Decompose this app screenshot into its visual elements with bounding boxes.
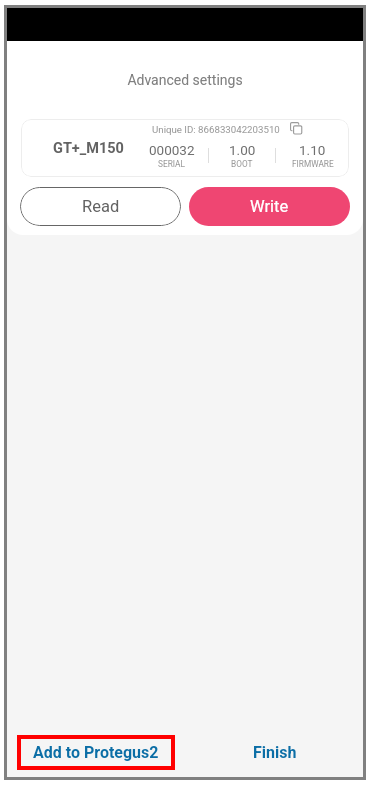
staticText: BOOT (231, 159, 253, 169)
button[interactable]: Write (189, 187, 350, 226)
button[interactable]: Add to Protegus2 (17, 735, 175, 770)
staticText: 1.10 (299, 142, 326, 158)
staticText: SERIAL (158, 159, 185, 169)
button[interactable]: Read (20, 187, 181, 226)
staticText: GT+_M150 (53, 140, 124, 157)
staticText: 1.00 (229, 142, 256, 158)
staticText: Finish (253, 743, 297, 762)
staticText: Advanced settings (7, 72, 363, 88)
other: Copy unique ID (290, 122, 302, 134)
staticText: FIRMWARE (292, 159, 334, 169)
button[interactable]: Finish (233, 733, 317, 772)
staticText: 000032 (149, 142, 195, 158)
staticText: Add to Protegus2 (33, 743, 159, 762)
staticText: Unique ID: 866833042203510 (152, 124, 280, 135)
staticText: Write (250, 197, 289, 216)
staticText: Read (82, 197, 120, 216)
